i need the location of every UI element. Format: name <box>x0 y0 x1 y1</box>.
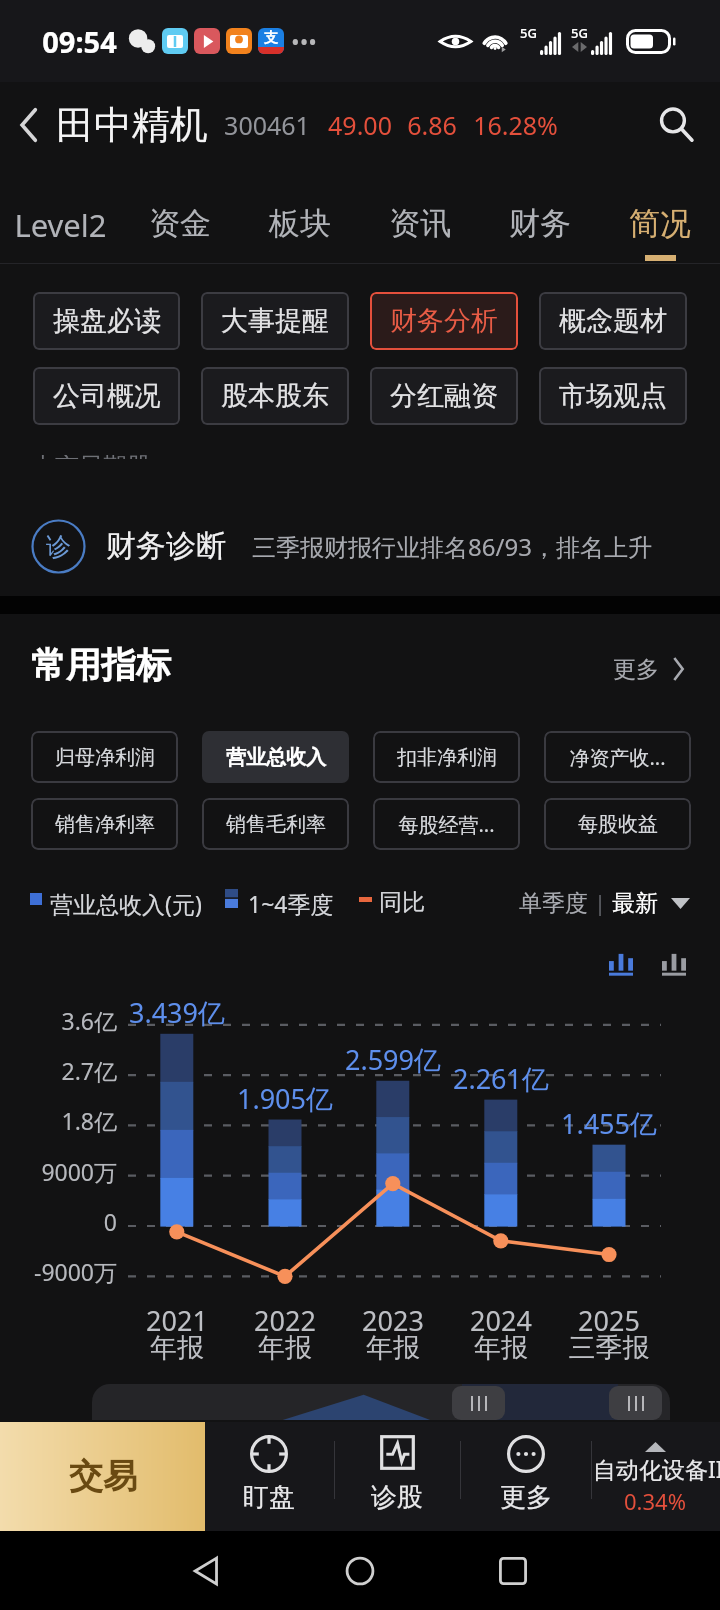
staticText: 公司概况 <box>53 379 161 413</box>
staticText: 1~4季度 <box>248 888 334 919</box>
staticText: 2025 三季报 <box>539 1302 679 1365</box>
staticText: 股本股东 <box>221 379 329 413</box>
staticText: 大事提醒 <box>221 304 329 338</box>
button[interactable]: Level2 <box>0 168 120 263</box>
staticText: 0 <box>0 1206 117 1237</box>
staticText: 财务 <box>509 204 571 243</box>
staticText: 300461 <box>224 108 310 142</box>
button[interactable]: 财务 <box>480 168 600 263</box>
staticText: 上市日期股票简称 <box>31 455 165 459</box>
staticText: 销售毛利率 <box>226 812 326 837</box>
staticText: 自动化设备II <box>593 1453 720 1484</box>
button[interactable]: Back <box>0 97 56 153</box>
staticText: 三季报财报行业排名86/93，排名上升 <box>252 530 652 563</box>
staticText: 归母净利润 <box>55 745 155 770</box>
button[interactable]: 市场观点 <box>539 367 687 425</box>
button[interactable]: 营业总收入 <box>202 731 349 783</box>
staticText: 1.905亿 <box>215 1080 355 1117</box>
button[interactable]: Column chart <box>650 944 698 982</box>
staticText: 简况 <box>629 204 691 243</box>
button[interactable]: 操盘必读 <box>33 292 180 350</box>
staticText: 5G <box>520 24 537 42</box>
staticText: ••• <box>291 26 317 57</box>
button[interactable]: 大事提醒 <box>201 292 349 350</box>
button[interactable]: 销售毛利率 <box>202 798 349 850</box>
button[interactable]: Range handle <box>452 1386 505 1420</box>
staticText: 支 <box>264 29 278 47</box>
button[interactable]: 每股收益 <box>544 798 691 850</box>
staticText: 09:54 <box>42 22 117 61</box>
staticText: 常用指标 <box>31 643 171 687</box>
staticText: 财务诊断 <box>106 527 226 565</box>
button[interactable]: 概念题材 <box>539 292 687 350</box>
staticText: 最新 <box>612 889 658 918</box>
staticText: 同比 <box>379 888 425 917</box>
staticText: 3.439亿 <box>107 994 247 1031</box>
staticText: 每股收益 <box>578 812 658 837</box>
staticText: 1.455亿 <box>539 1105 679 1142</box>
staticText: 概念题材 <box>559 304 667 338</box>
staticText: 9000万 <box>0 1156 117 1187</box>
button[interactable]: 交易 <box>0 1422 205 1531</box>
staticText: 诊股 <box>371 1481 423 1514</box>
staticText: 2.7亿 <box>0 1055 117 1086</box>
button[interactable]: Stacked bar chart <box>597 944 645 982</box>
button[interactable]: 股本股东 <box>201 367 349 425</box>
staticText: 财务分析 <box>390 304 498 338</box>
staticText: 田中精机 <box>56 101 208 149</box>
staticText: 2.261亿 <box>431 1060 571 1097</box>
button[interactable]: Recents <box>481 1539 545 1603</box>
staticText: 销售净利率 <box>55 812 155 837</box>
button[interactable]: Search <box>646 95 706 155</box>
staticText: 0.34% <box>592 1486 718 1516</box>
button[interactable]: 每股经营... <box>373 798 520 850</box>
staticText: 资讯 <box>389 204 451 243</box>
button[interactable]: 分红融资 <box>370 367 518 425</box>
staticText: 盯盘 <box>243 1481 295 1514</box>
staticText: 6.86 <box>407 108 457 142</box>
button[interactable]: 盯盘 <box>211 1422 327 1531</box>
staticText: 2022 年报 <box>215 1302 355 1365</box>
button[interactable]: Back <box>175 1539 239 1603</box>
button[interactable]: 资讯 <box>360 168 480 263</box>
staticText: 2021 年报 <box>107 1302 247 1365</box>
staticText: 操盘必读 <box>53 304 161 338</box>
staticText: 营业总收入(元) <box>50 888 202 919</box>
button[interactable]: 板块 <box>240 168 360 263</box>
staticText: 1.8亿 <box>0 1105 117 1136</box>
button[interactable]: 诊 <box>31 508 720 584</box>
button[interactable]: 公司概况 <box>33 367 180 425</box>
button[interactable]: 财务分析 <box>370 292 518 350</box>
staticText: 2023 年报 <box>323 1302 463 1365</box>
button[interactable]: 简况 <box>600 168 720 263</box>
staticText: | <box>594 889 606 918</box>
button[interactable]: 扣非净利润 <box>373 731 520 783</box>
button[interactable]: Range handle <box>609 1386 662 1420</box>
staticText: 3.6亿 <box>0 1005 117 1036</box>
staticText: 诊 <box>46 531 71 562</box>
staticText: 2.599亿 <box>323 1041 463 1078</box>
button[interactable]: 净资产收... <box>544 731 691 783</box>
staticText: 2024 年报 <box>431 1302 571 1365</box>
staticText: 5G <box>571 24 588 42</box>
button[interactable]: 资金 <box>120 168 240 263</box>
staticText: 市场观点 <box>559 379 667 413</box>
staticText: 板块 <box>269 204 331 243</box>
button[interactable]: 单季度 <box>519 884 690 922</box>
staticText: 单季度 <box>519 889 588 918</box>
staticText: 交易 <box>69 1455 137 1498</box>
staticText: 更多 <box>500 1481 552 1514</box>
staticText: 资金 <box>149 204 211 243</box>
staticText: 49.00 <box>328 108 392 142</box>
button[interactable]: 销售净利率 <box>31 798 178 850</box>
button[interactable]: Home <box>328 1539 392 1603</box>
staticText: 更多 <box>613 655 659 684</box>
button[interactable]: 归母净利润 <box>31 731 178 783</box>
button[interactable]: 诊股 <box>339 1422 455 1531</box>
staticText: -9000万 <box>0 1256 117 1287</box>
staticText: 分红融资 <box>390 379 498 413</box>
staticText: 净资产收... <box>569 744 666 771</box>
button[interactable]: 自动化设备II <box>592 1422 720 1531</box>
button[interactable]: 更多 <box>613 644 684 694</box>
button[interactable]: 更多 <box>468 1422 584 1531</box>
